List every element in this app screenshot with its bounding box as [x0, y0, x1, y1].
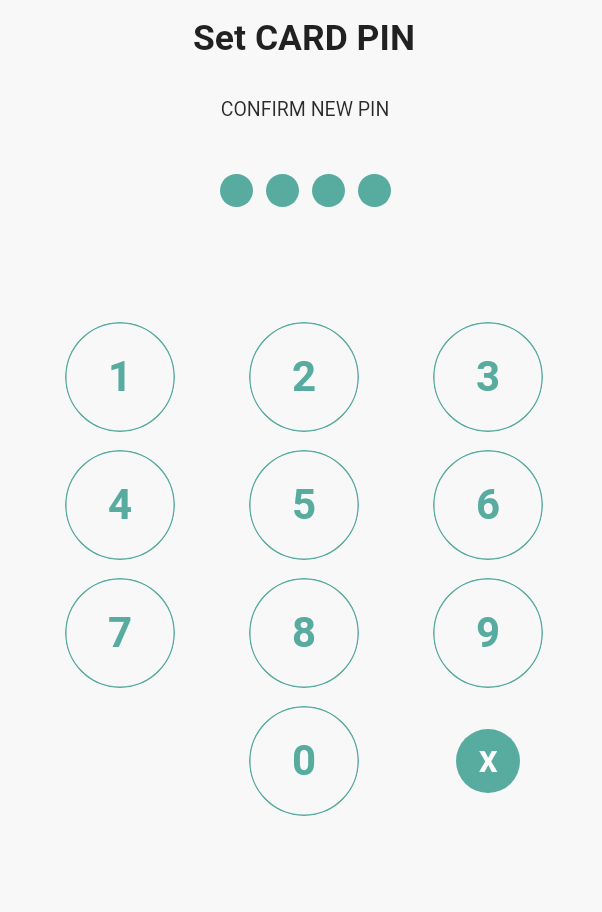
button[interactable]: 6	[433, 450, 543, 560]
button[interactable]: Delete	[456, 729, 520, 793]
button[interactable]: 4	[65, 450, 175, 560]
staticText: 6	[476, 480, 501, 529]
button[interactable]: 0	[249, 706, 359, 816]
staticText: 9	[476, 608, 501, 657]
button[interactable]: 3	[433, 322, 543, 432]
staticText: CONFIRM NEW PIN	[4, 98, 602, 121]
staticText: 7	[108, 608, 133, 657]
button[interactable]: 9	[433, 578, 543, 688]
staticText: 1	[108, 352, 133, 401]
button[interactable]: 7	[65, 578, 175, 688]
button[interactable]: 1	[65, 322, 175, 432]
button[interactable]: 2	[249, 322, 359, 432]
staticText: 5	[292, 480, 317, 529]
staticText: 4	[108, 480, 133, 529]
button[interactable]: 5	[249, 450, 359, 560]
staticText: 0	[292, 736, 317, 785]
staticText: 2	[292, 352, 317, 401]
staticText: 8	[292, 608, 317, 657]
button[interactable]: 8	[249, 578, 359, 688]
staticText: X	[479, 745, 498, 779]
staticText: 3	[476, 352, 501, 401]
staticText: Set CARD PIN	[3, 17, 602, 59]
